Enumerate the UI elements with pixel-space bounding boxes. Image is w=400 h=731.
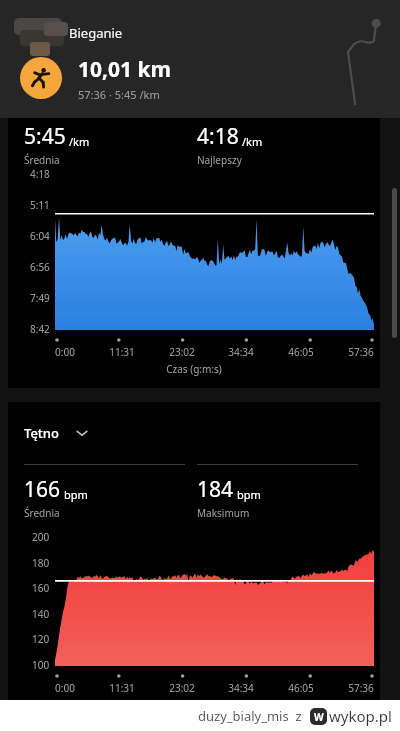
staticText: 46:05 [288, 681, 314, 695]
staticText: 184 [197, 475, 234, 504]
staticText: 200 [32, 530, 50, 544]
staticText: Średnia [24, 506, 60, 520]
staticText: 57:36 [348, 345, 374, 359]
staticText: 6:04 [30, 229, 50, 243]
staticText: 4:18 [30, 167, 50, 181]
staticText: 4:18 [197, 122, 239, 151]
staticText: Maksimum [197, 506, 250, 520]
staticText: 23:02 [169, 345, 195, 359]
other: Rozwiń [75, 426, 89, 440]
staticText: 57:36 [348, 681, 374, 695]
staticText: bpm [237, 487, 261, 502]
staticText: Najlepszy [197, 153, 242, 167]
staticText: Średnia [24, 153, 60, 167]
button[interactable]: Tętno [8, 402, 380, 700]
staticText: wykop.pl [329, 706, 392, 726]
button[interactable]: 5:45 [8, 118, 380, 388]
staticText: 5:11 [30, 198, 50, 212]
staticText: duzy_bialy_mis z [198, 707, 302, 725]
staticText: /km [242, 134, 263, 149]
staticText: 7:49 [30, 291, 50, 305]
staticText: 6:56 [30, 260, 50, 274]
staticText: 140 [32, 607, 50, 621]
staticText: 11:31 [109, 681, 135, 695]
staticText: Bieganie [69, 24, 123, 42]
staticText: bpm [64, 487, 88, 502]
staticText: 34:34 [228, 345, 254, 359]
staticText: 180 [32, 556, 50, 570]
staticText: 120 [32, 632, 50, 646]
staticText: 160 [32, 581, 50, 595]
staticText: Tętno [24, 424, 59, 442]
staticText: 0:00 [55, 681, 75, 695]
button[interactable]: Tętno [24, 424, 89, 442]
button[interactable]: Bieganie [20, 57, 62, 99]
staticText: 34:34 [228, 681, 254, 695]
staticText: 11:31 [109, 345, 135, 359]
staticText: 46:05 [288, 345, 314, 359]
staticText: 8:42 [30, 322, 50, 336]
staticText: 10,01 km [78, 55, 171, 84]
staticText: 100 [32, 658, 50, 672]
staticText: W [314, 710, 324, 724]
staticText: 5:45 [24, 122, 66, 151]
staticText: 166 [24, 475, 61, 504]
staticText: 23:02 [169, 681, 195, 695]
staticText: Czas (g:m:s) [8, 362, 380, 376]
staticText: /km [69, 134, 90, 149]
staticText: 0:00 [55, 345, 75, 359]
staticText: 57:36 · 5:45 /km [78, 87, 160, 102]
